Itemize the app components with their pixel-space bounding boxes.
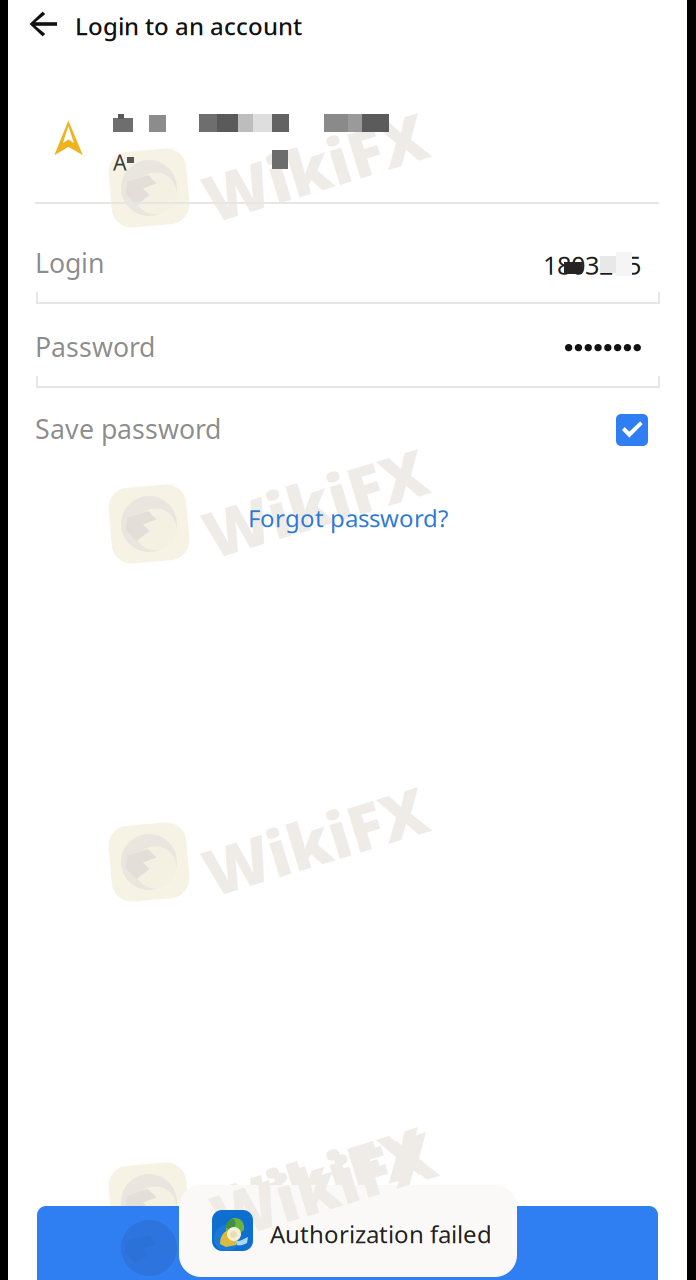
staticText: Forgot password? — [248, 502, 448, 534]
staticText: WikiFX — [200, 798, 430, 883]
button[interactable]: Password — [37, 300, 658, 382]
staticText: WikiFX — [200, 1138, 430, 1223]
staticText: 1803215 — [543, 248, 641, 282]
button[interactable] — [37, 1206, 658, 1280]
staticText: Login to an account — [75, 10, 302, 42]
staticText: A — [113, 148, 127, 176]
button[interactable]: A — [37, 52, 658, 198]
staticText: Save password — [35, 411, 221, 446]
staticText: WikiFX — [200, 124, 430, 209]
staticText: Login — [35, 245, 104, 280]
staticText: WikiFX — [208, 1143, 438, 1228]
button[interactable]: Back — [28, 0, 86, 48]
button[interactable]: Save password — [37, 383, 658, 447]
button[interactable]: Login — [37, 203, 658, 299]
staticText: Password — [35, 329, 155, 364]
staticText: Authorization failed — [270, 1218, 492, 1250]
button[interactable]: Forgot password? — [208, 490, 488, 546]
staticText: WikiFX — [200, 460, 430, 545]
